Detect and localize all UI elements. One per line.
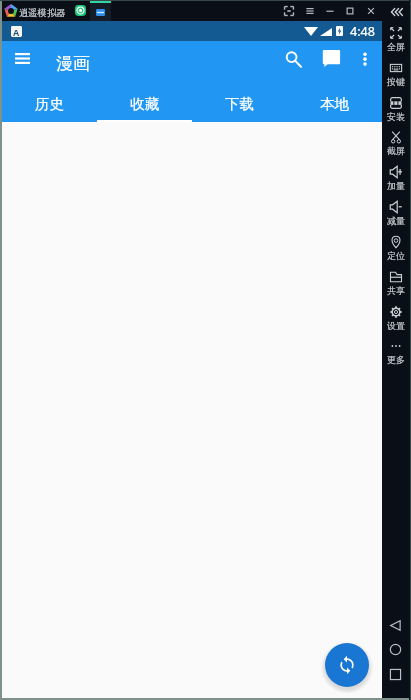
staticText: 漫画 — [56, 53, 90, 74]
staticText: 定位 — [387, 250, 405, 261]
staticText: 按键 — [387, 76, 405, 87]
button[interactable]: Sync — [325, 643, 369, 687]
staticText: A — [13, 26, 20, 37]
button[interactable]: Fullscreen — [283, 5, 295, 17]
staticText: 本地 — [320, 95, 350, 113]
staticText: 截屏 — [387, 145, 405, 156]
staticText: 4:48 — [350, 23, 375, 40]
button[interactable]: Collapse sidebar — [388, 4, 404, 20]
staticText: 收藏 — [130, 95, 160, 113]
button[interactable]: 按键 — [382, 58, 409, 88]
button[interactable]: Home — [382, 639, 409, 659]
button[interactable]: 本地 — [287, 85, 382, 121]
button[interactable]: 加量 — [382, 162, 409, 192]
button[interactable]: More options — [354, 47, 376, 69]
staticText: 逍遥模拟器 — [19, 7, 66, 19]
button[interactable]: 更多 — [382, 336, 409, 366]
button[interactable]: 安装 — [382, 93, 409, 123]
button[interactable]: 全屏 — [382, 23, 409, 53]
button[interactable]: Messages — [320, 47, 342, 69]
staticText: 历史 — [35, 95, 65, 113]
button[interactable]: 定位 — [382, 232, 409, 262]
button[interactable]: Minimise — [324, 5, 336, 17]
staticText: 更多 — [387, 354, 405, 365]
button[interactable]: 设置 — [382, 302, 409, 332]
button[interactable]: Back — [382, 615, 409, 635]
button[interactable]: Menu — [304, 5, 316, 17]
button[interactable]: 截屏 — [382, 127, 409, 157]
staticText: 安装 — [387, 111, 405, 122]
button[interactable]: Recents — [382, 664, 409, 684]
staticText: 全屏 — [387, 41, 405, 52]
staticText: 加量 — [387, 180, 405, 191]
staticText: 共享 — [387, 285, 405, 296]
button[interactable]: 共享 — [382, 267, 409, 297]
button[interactable]: Search — [282, 47, 306, 71]
button[interactable]: 收藏 — [97, 85, 192, 121]
staticText: 设置 — [387, 320, 405, 331]
button[interactable]: Close — [365, 5, 377, 17]
button[interactable]: 下载 — [192, 85, 287, 121]
staticText: 减量 — [387, 215, 405, 226]
button[interactable]: Navigation drawer — [7, 47, 38, 69]
staticText: 下载 — [225, 95, 255, 113]
button[interactable]: 减量 — [382, 197, 409, 227]
button[interactable]: 历史 — [2, 85, 97, 121]
button[interactable]: Recorder — [75, 5, 86, 16]
button[interactable]: Maximise — [344, 5, 356, 17]
